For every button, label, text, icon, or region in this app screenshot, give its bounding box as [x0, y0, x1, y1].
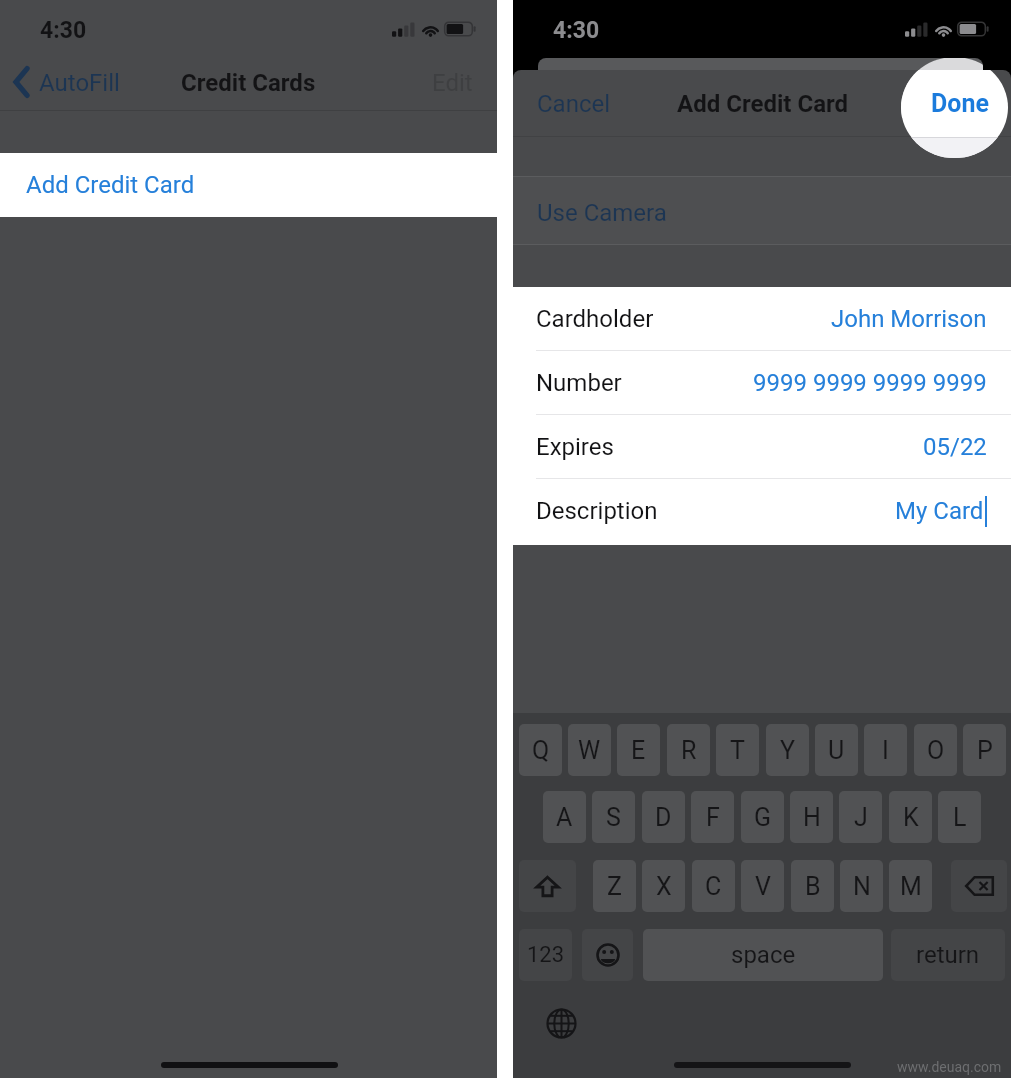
- button[interactable]: Edit: [432, 69, 473, 97]
- staticText: Cardholder: [536, 305, 654, 333]
- button[interactable]: Number: [513, 351, 1011, 415]
- staticText: AutoFill: [39, 69, 120, 97]
- staticText: Add Credit Card: [26, 171, 195, 199]
- button[interactable]: M: [889, 860, 932, 912]
- staticText: 4:30: [553, 17, 600, 44]
- staticText: Done: [931, 89, 989, 118]
- button[interactable]: T: [716, 724, 759, 776]
- button[interactable]: space: [643, 929, 883, 981]
- staticText: 9999 9999 9999 9999: [753, 369, 987, 397]
- staticText: E: [631, 736, 646, 765]
- button[interactable]: Backspace: [951, 860, 1007, 912]
- staticText: return: [916, 941, 980, 969]
- staticText: S: [606, 803, 621, 832]
- button[interactable]: Q: [519, 724, 562, 776]
- button[interactable]: I: [864, 724, 907, 776]
- button[interactable]: AutoFill: [13, 50, 120, 111]
- staticText: My Card: [895, 497, 984, 525]
- staticText: U: [828, 736, 845, 765]
- staticText: Add Credit Card: [677, 90, 849, 118]
- staticText: R: [681, 736, 697, 765]
- staticText: C: [705, 872, 722, 901]
- button[interactable]: Use Camera: [513, 176, 1011, 245]
- button[interactable]: R: [667, 724, 710, 776]
- button[interactable]: Cardholder: [513, 287, 1011, 351]
- button[interactable]: return: [891, 929, 1005, 981]
- staticText: I: [882, 736, 889, 765]
- button[interactable]: Expires: [513, 415, 1011, 479]
- staticText: 4:30: [40, 17, 87, 44]
- staticText: A: [556, 803, 573, 832]
- button[interactable]: D: [642, 791, 685, 843]
- staticText: W: [578, 736, 601, 765]
- staticText: Description: [536, 497, 658, 525]
- staticText: X: [656, 872, 672, 901]
- button[interactable]: V: [741, 860, 784, 912]
- staticText: B: [805, 872, 821, 901]
- staticText: V: [755, 872, 771, 901]
- button[interactable]: Cancel: [537, 90, 611, 118]
- button[interactable]: P: [963, 724, 1006, 776]
- button[interactable]: C: [692, 860, 735, 912]
- staticText: Z: [607, 872, 622, 901]
- button[interactable]: J: [839, 791, 882, 843]
- staticText: H: [803, 803, 821, 832]
- staticText: F: [706, 803, 720, 832]
- button[interactable]: N: [840, 860, 883, 912]
- staticText: P: [977, 736, 993, 765]
- button[interactable]: H: [790, 791, 833, 843]
- button[interactable]: Y: [766, 724, 809, 776]
- staticText: M: [900, 872, 922, 901]
- button[interactable]: Shift: [519, 860, 576, 912]
- button[interactable]: Emoji: [582, 929, 633, 981]
- staticText: 05/22: [923, 433, 987, 461]
- staticText: Number: [536, 369, 622, 397]
- staticText: Q: [532, 736, 550, 765]
- staticText: O: [927, 736, 945, 765]
- staticText: www.deuaq.com: [897, 1059, 1002, 1075]
- staticText: N: [853, 872, 871, 901]
- button[interactable]: Done: [513, 0, 1011, 1078]
- button[interactable]: Description: [513, 479, 1011, 543]
- staticText: Credit Cards: [181, 69, 316, 97]
- button[interactable]: O: [914, 724, 957, 776]
- button[interactable]: B: [791, 860, 834, 912]
- staticText: K: [903, 803, 919, 832]
- button[interactable]: Z: [593, 860, 636, 912]
- staticText: L: [953, 803, 967, 832]
- staticText: Use Camera: [537, 199, 667, 227]
- staticText: J: [854, 803, 868, 832]
- button[interactable]: K: [889, 791, 932, 843]
- staticText: 123: [527, 942, 565, 968]
- button[interactable]: U: [815, 724, 858, 776]
- button[interactable]: Done: [929, 90, 985, 118]
- staticText: Expires: [536, 433, 614, 461]
- button[interactable]: A: [543, 791, 586, 843]
- button[interactable]: F: [691, 791, 734, 843]
- staticText: G: [754, 803, 772, 832]
- staticText: D: [655, 803, 672, 832]
- button[interactable]: Change keyboard: [544, 1006, 578, 1040]
- staticText: Y: [780, 736, 796, 765]
- button[interactable]: G: [741, 791, 784, 843]
- staticText: John Morrison: [831, 305, 987, 333]
- button[interactable]: 123: [519, 929, 572, 981]
- button[interactable]: W: [568, 724, 611, 776]
- staticText: T: [730, 736, 745, 765]
- button[interactable]: L: [938, 791, 981, 843]
- button[interactable]: S: [592, 791, 635, 843]
- button[interactable]: X: [642, 860, 685, 912]
- staticText: space: [731, 941, 796, 969]
- button[interactable]: E: [617, 724, 660, 776]
- button[interactable]: Add Credit Card: [0, 153, 497, 217]
